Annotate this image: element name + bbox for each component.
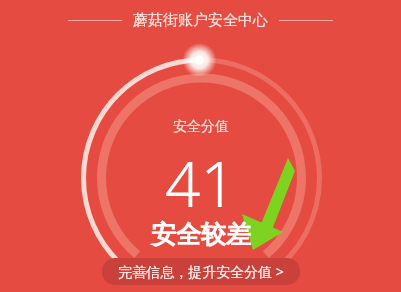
- staticText: 安全分值: [173, 118, 229, 136]
- staticText: 完善信息，提升安全分值 >: [118, 262, 284, 281]
- button[interactable]: 完善信息，提升安全分值 >: [102, 258, 300, 285]
- staticText: 安全较差: [151, 219, 251, 250]
- staticText: 41: [165, 141, 236, 225]
- staticText: 蘑菇街账户安全中心: [133, 11, 268, 30]
